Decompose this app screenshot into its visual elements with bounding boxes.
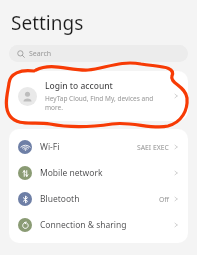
staticText: Login to account: [45, 80, 113, 92]
staticText: Connection & sharing: [40, 219, 173, 231]
staticText: Mobile network: [40, 167, 173, 179]
staticText: HeyTap Cloud, Find My, devices and more.: [45, 94, 169, 112]
staticText: Wi-Fi: [40, 141, 137, 153]
button[interactable]: Bluetooth: [9, 186, 188, 212]
button[interactable]: Login to account: [9, 71, 188, 121]
staticText: Bluetooth: [40, 193, 159, 205]
button[interactable]: Search: [9, 45, 188, 62]
staticText: Settings: [11, 10, 84, 36]
staticText: Search: [29, 49, 52, 59]
button[interactable]: Connection & sharing: [9, 212, 188, 238]
button[interactable]: Mobile network: [9, 160, 188, 186]
staticText: Off: [159, 195, 169, 204]
button[interactable]: Wi-Fi: [9, 134, 188, 160]
staticText: SAEI EXEC: [137, 143, 169, 152]
